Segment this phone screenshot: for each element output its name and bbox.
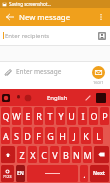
button[interactable]: M [83, 146, 92, 163]
button[interactable]: A [1, 127, 10, 144]
staticText: English [47, 94, 68, 102]
staticText: ?123 [3, 174, 12, 179]
button[interactable]: R [34, 107, 43, 125]
button[interactable]: Add recipient [95, 29, 109, 43]
button[interactable]: P [100, 107, 109, 125]
staticText: K [83, 130, 89, 142]
button[interactable]: Enter recipients [0, 26, 110, 45]
staticText: Enter message [16, 67, 62, 76]
button[interactable]: Attach [0, 65, 16, 81]
staticText: . [83, 168, 86, 180]
staticText: X [30, 149, 36, 161]
button[interactable]: Space [27, 165, 78, 182]
staticText: Q [2, 110, 10, 122]
staticText: Y [58, 110, 64, 122]
button[interactable]: I [78, 107, 87, 125]
staticText: E [25, 110, 31, 122]
button[interactable]: Microphone [15, 94, 22, 101]
staticText: J [73, 130, 76, 142]
button[interactable]: Theme [24, 94, 32, 102]
button[interactable]: V [50, 146, 59, 163]
staticText: P [102, 110, 108, 122]
button[interactable]: ?123 [1, 165, 14, 182]
button[interactable]: Handwriting [84, 94, 92, 102]
button[interactable]: Back [0, 8, 19, 26]
staticText: G [47, 130, 54, 142]
button[interactable]: S [12, 127, 21, 144]
button[interactable]: L [93, 127, 103, 144]
button[interactable]: Emoji [2, 94, 10, 102]
button[interactable]: EN [16, 165, 25, 182]
button[interactable]: H [57, 127, 67, 144]
staticText: I [81, 110, 85, 122]
button[interactable]: D [23, 127, 32, 144]
button[interactable]: N [72, 146, 81, 163]
staticText: 160/1 [93, 80, 104, 85]
button[interactable]: E [23, 107, 32, 125]
button[interactable]: O [89, 107, 98, 125]
button[interactable]: . [80, 165, 88, 182]
staticText: N [73, 149, 80, 161]
staticText: H [59, 130, 66, 142]
staticText: EN [17, 170, 24, 177]
button[interactable]: U [67, 107, 76, 125]
staticText: A [3, 130, 9, 142]
button[interactable]: Backspace [94, 146, 109, 163]
staticText: Saving screenshot... [9, 1, 52, 7]
staticText: W [12, 110, 21, 122]
staticText: T [47, 110, 53, 122]
button[interactable]: T [45, 107, 54, 125]
button[interactable]: Q [1, 107, 10, 125]
button[interactable]: Next [90, 165, 109, 182]
staticText: New message [19, 12, 71, 23]
staticText: Next [93, 170, 106, 177]
staticText: U [68, 110, 75, 122]
button[interactable]: G [45, 127, 55, 144]
button[interactable]: Hide keyboard [96, 93, 106, 103]
staticText: V [52, 149, 58, 161]
staticText: C [41, 149, 47, 161]
staticText: O [90, 110, 98, 122]
button[interactable]: X [28, 146, 37, 163]
staticText: R [36, 110, 42, 122]
staticText: F [36, 130, 41, 142]
button[interactable]: C [39, 146, 48, 163]
button[interactable]: Y [56, 107, 65, 125]
button[interactable]: Shift [1, 146, 15, 163]
staticText: Z [19, 149, 25, 161]
button[interactable]: F [34, 127, 43, 144]
button[interactable]: J [69, 127, 79, 144]
button[interactable]: K [81, 127, 91, 144]
button[interactable]: Send [92, 66, 105, 79]
staticText: L [96, 130, 101, 142]
button[interactable]: More options [93, 9, 109, 25]
button[interactable]: W [12, 107, 21, 125]
button[interactable]: Z [17, 146, 26, 163]
staticText: M [83, 149, 92, 161]
staticText: Enter recipients [5, 32, 50, 40]
staticText: S [14, 130, 19, 142]
staticText: B [63, 149, 69, 161]
button[interactable]: B [61, 146, 70, 163]
staticText: D [24, 130, 31, 142]
